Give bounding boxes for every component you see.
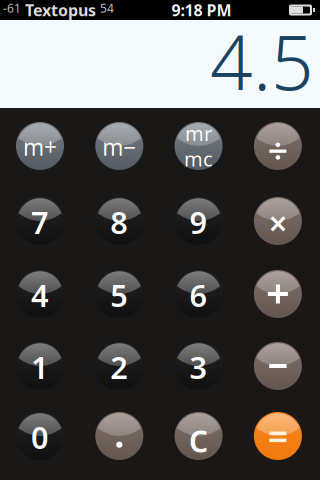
button[interactable]: 4 (16, 270, 64, 318)
button[interactable]: m− (95, 122, 143, 170)
button[interactable]: 8 (95, 197, 143, 245)
button[interactable]: decimal point (95, 412, 143, 460)
button[interactable]: m+ (16, 122, 64, 170)
staticText: 7 (31, 202, 49, 242)
staticText: mr (185, 120, 212, 146)
staticText: 5 (110, 275, 128, 315)
button[interactable]: 3 (175, 342, 223, 390)
staticText: 6 (190, 275, 208, 315)
staticText: 4.5 (210, 11, 314, 111)
button[interactable]: 1 (16, 342, 64, 390)
button[interactable]: divide (254, 122, 302, 170)
staticText: Textopus (21, 0, 100, 21)
staticText: 0 (31, 417, 49, 457)
staticText: 2 (110, 347, 128, 387)
staticText: mc (184, 145, 213, 172)
staticText: × (268, 201, 287, 245)
button[interactable]: 7 (16, 197, 64, 245)
button[interactable]: 0 (16, 412, 64, 460)
staticText: 9:18 PM (171, 0, 231, 21)
button[interactable]: mr mc (175, 122, 223, 170)
button[interactable]: equals (254, 412, 302, 460)
staticText: 9 (190, 202, 208, 242)
button[interactable]: × (254, 197, 302, 245)
staticText: m− (102, 132, 136, 162)
staticText: 3 (190, 347, 208, 387)
staticText: 54 (100, 0, 114, 16)
staticText: 4 (31, 275, 49, 315)
staticText: 1 (31, 347, 49, 387)
button[interactable]: c (175, 412, 223, 460)
staticText: 8 (110, 202, 128, 242)
button[interactable]: 9 (175, 197, 223, 245)
staticText: c (189, 410, 209, 463)
button[interactable]: minus (254, 342, 302, 390)
staticText: m+ (23, 132, 57, 162)
button[interactable]: 6 (175, 270, 223, 318)
button[interactable]: 2 (95, 342, 143, 390)
staticText: -61 (3, 0, 21, 16)
button[interactable]: plus (254, 270, 302, 318)
button[interactable]: 5 (95, 270, 143, 318)
